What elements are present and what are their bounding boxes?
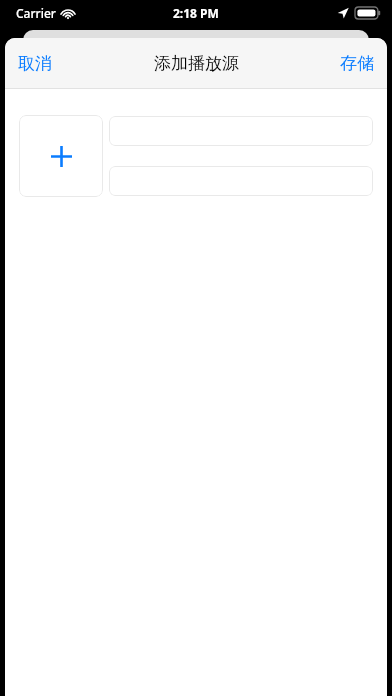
button[interactable]: 地址输入框 — [109, 166, 373, 196]
staticText: 2:18 PM — [173, 5, 219, 21]
button[interactable]: 添加图片 — [19, 115, 103, 197]
staticText: Carrier — [16, 5, 56, 21]
staticText: 存储 — [340, 53, 374, 74]
button[interactable]: 取消 — [5, 45, 65, 82]
button[interactable]: 存储 — [327, 45, 387, 82]
staticText: 添加播放源 — [154, 53, 239, 74]
button[interactable]: 名称输入框 — [109, 116, 373, 146]
staticText: 取消 — [18, 53, 52, 74]
